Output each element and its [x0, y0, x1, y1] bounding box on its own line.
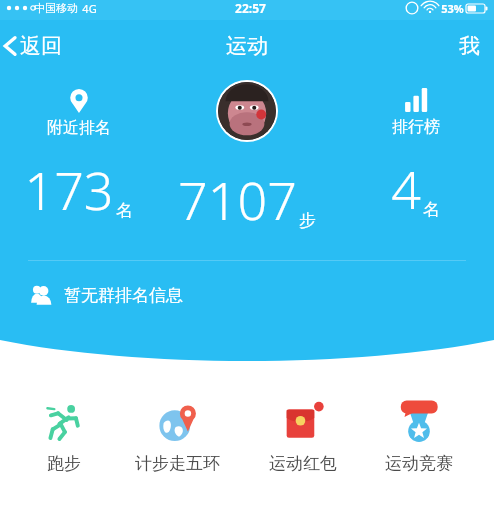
button[interactable]: 7107	[157, 72, 337, 235]
staticText: 附近排名	[47, 118, 111, 138]
staticText: 4	[391, 153, 421, 224]
staticText: 我	[459, 33, 480, 59]
staticText: 计步走五环	[135, 453, 220, 474]
staticText: 运动红包	[269, 453, 337, 474]
button[interactable]: 附近排名	[0, 72, 157, 225]
button[interactable]: 排行榜	[337, 72, 494, 224]
button[interactable]: 运动红包	[261, 395, 345, 478]
button[interactable]: 暂无群排名信息	[0, 261, 494, 329]
staticText: 173	[24, 154, 114, 225]
staticText: 4G	[82, 1, 97, 16]
staticText: 名	[116, 200, 133, 221]
staticText: 中国移动	[34, 1, 78, 15]
button[interactable]: 计步走五环	[127, 395, 228, 478]
staticText: 返回	[20, 33, 62, 59]
staticText: 7107	[178, 164, 297, 235]
staticText: 名	[423, 199, 440, 220]
staticText: 运动	[226, 33, 268, 59]
staticText: 22:57	[235, 0, 266, 16]
staticText: 步	[299, 210, 316, 231]
button[interactable]: 跑步	[33, 395, 95, 478]
staticText: 暂无群排名信息	[64, 285, 183, 306]
staticText: 运动竞赛	[385, 453, 453, 474]
staticText: 53%	[441, 1, 464, 16]
staticText: 跑步	[47, 453, 81, 474]
staticText: 排行榜	[392, 117, 440, 137]
button[interactable]: 我	[445, 27, 494, 65]
button[interactable]: 运动	[212, 27, 282, 65]
button[interactable]: 运动竞赛	[377, 395, 461, 478]
button[interactable]: 返回	[0, 27, 74, 65]
